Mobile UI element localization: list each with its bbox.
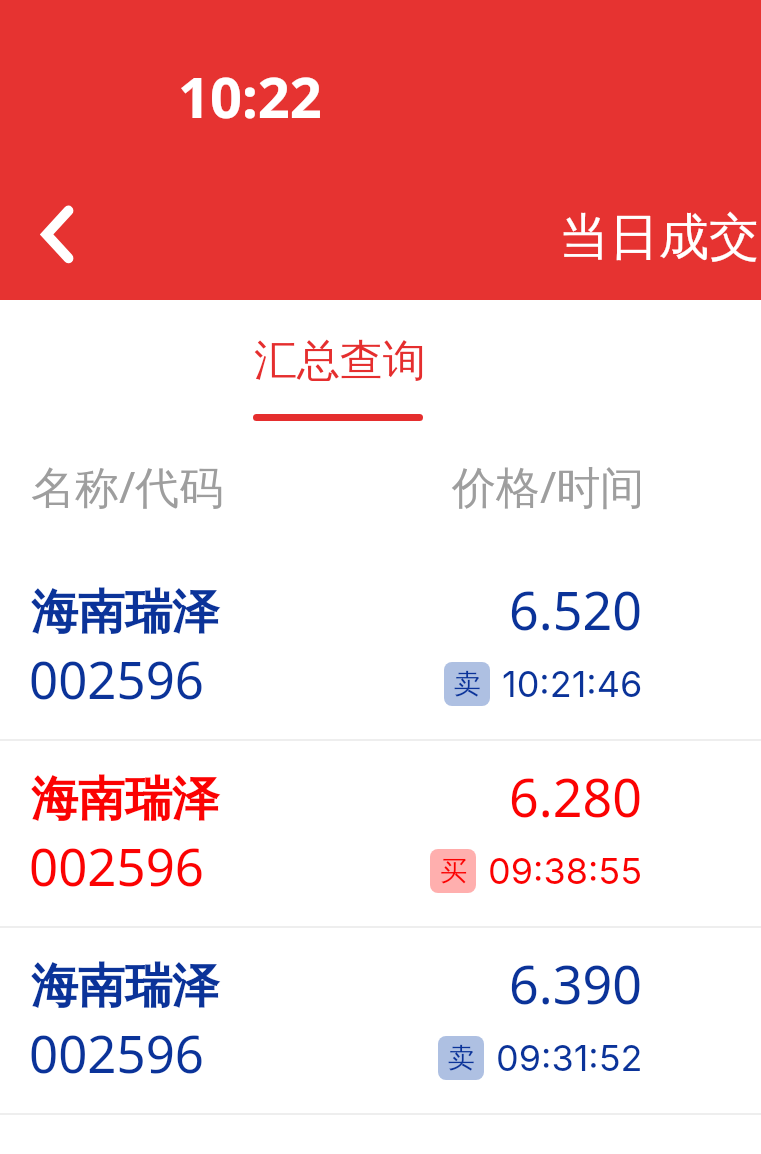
staticText: 6.520	[342, 574, 642, 645]
staticText: 海南瑞泽	[31, 583, 219, 642]
staticText: 09:38:55	[488, 849, 643, 893]
staticText: 买	[440, 854, 467, 888]
staticText: 002596	[29, 831, 205, 900]
staticText: 名称/代码	[31, 456, 224, 516]
button[interactable]: 海南瑞泽	[0, 739, 761, 926]
staticText: 价格/时间	[452, 456, 645, 516]
staticText: 10:21:46	[502, 662, 643, 706]
staticText: 海南瑞泽	[31, 770, 219, 829]
staticText: 6.390	[342, 948, 642, 1019]
button[interactable]: 海南瑞泽	[0, 926, 761, 1113]
staticText: 6.280	[342, 761, 642, 832]
staticText: 海南瑞泽	[31, 957, 219, 1016]
staticText: 10:22	[178, 58, 322, 134]
staticText: 卖	[454, 667, 481, 701]
button[interactable]: 海南瑞泽	[0, 552, 761, 739]
staticText: 当日成交	[559, 206, 759, 269]
button[interactable]: 汇总查询	[228, 318, 448, 436]
staticText: 002596	[29, 644, 205, 713]
staticText: 卖	[448, 1041, 475, 1075]
staticText: 09:31:52	[496, 1036, 643, 1080]
button[interactable]: Back	[20, 190, 96, 266]
staticText: 002596	[29, 1018, 205, 1087]
staticText: 汇总查询	[254, 334, 426, 388]
